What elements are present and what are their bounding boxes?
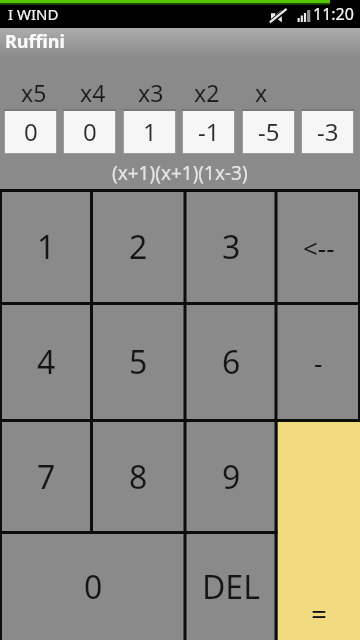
staticText: x5 [21,77,47,102]
button[interactable]: 5 [93,305,184,419]
button[interactable]: <-- [278,192,359,302]
button[interactable]: - [278,305,359,419]
button[interactable]: 8 [93,422,184,531]
button[interactable]: 1 [2,192,90,302]
button[interactable]: 3 [187,192,275,302]
staticText: = [311,594,328,632]
staticText: 1 [37,225,56,269]
staticText: x4 [80,77,106,102]
button[interactable]: 0 [2,534,184,640]
staticText: 0 [24,115,38,148]
staticText: 9 [222,455,241,499]
staticText: 3 [222,225,241,269]
staticText: x3 [138,77,164,102]
staticText: I WIND [8,4,59,24]
staticText: -1 [198,115,220,148]
staticText: 1 [143,115,157,148]
button[interactable]: -1 [182,109,235,154]
button[interactable]: 7 [2,422,90,531]
staticText: 2 [129,225,148,269]
staticText: (x+1)(x+1)(1x-3) [112,160,248,184]
staticText: DEL [202,565,260,609]
staticText: 5 [129,340,148,384]
staticText: - [314,345,323,380]
button[interactable]: 0 [63,109,116,154]
staticText: x [255,77,268,102]
staticText: Ruffini [5,29,65,54]
staticText: 11:20 [313,3,354,25]
button[interactable]: DEL [187,534,275,640]
staticText: -5 [258,115,280,148]
staticText: 4 [37,340,56,384]
button[interactable]: 6 [187,305,275,419]
staticText: <-- [303,230,335,265]
button[interactable]: -3 [301,109,354,154]
staticText: x2 [194,77,220,102]
button[interactable]: = [278,422,360,640]
staticText: 8 [129,455,148,499]
button[interactable]: 1 [123,109,176,154]
staticText: -3 [317,115,339,148]
button[interactable]: 4 [2,305,90,419]
staticText: 0 [84,565,103,609]
button[interactable]: 0 [4,109,57,154]
button[interactable]: 9 [187,422,275,531]
staticText: 7 [37,455,56,499]
button[interactable]: 2 [93,192,184,302]
button[interactable]: -5 [242,109,295,154]
staticText: 0 [83,115,97,148]
staticText: 6 [222,340,241,384]
